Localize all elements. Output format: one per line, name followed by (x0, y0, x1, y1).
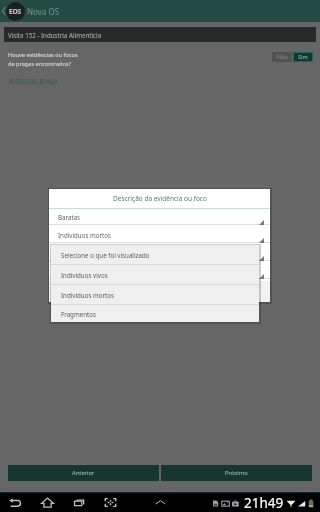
staticText: Visita 152 - Industria Alimenticia (8, 31, 102, 39)
staticText: Sim (298, 53, 308, 61)
button[interactable]: Não (272, 52, 292, 62)
button[interactable]: Selecione (49, 263, 270, 281)
staticText: 21h49 (244, 494, 284, 512)
button[interactable]: Baratas (49, 209, 270, 227)
staticText: Selecione (58, 249, 86, 257)
staticText: Individuos vivos (61, 271, 108, 279)
button[interactable]: Fragmentos (51, 305, 259, 322)
staticText: Próximo (225, 469, 248, 477)
button[interactable]: Selecione o que foi visualizado (51, 245, 259, 264)
staticText: Fragmentos (61, 310, 96, 318)
staticText: Adicionar praga (9, 76, 58, 85)
staticText: Selecione o que foi visualizado (61, 251, 150, 259)
button[interactable]: EOS logo (6, 2, 25, 21)
button[interactable]: Próximo (161, 465, 312, 481)
staticText: EOS (9, 7, 22, 16)
button[interactable]: Individuos mortos (51, 285, 259, 304)
button[interactable]: Back (5, 493, 25, 512)
button[interactable]: Recent apps (69, 493, 89, 512)
button[interactable]: Adicionar praga (9, 76, 58, 85)
button[interactable]: Expand status bar (150, 493, 170, 512)
button[interactable]: Selecione (49, 245, 270, 263)
button[interactable]: Home (37, 493, 57, 512)
button[interactable]: Anterior (8, 465, 159, 481)
staticText: Nova OS (27, 6, 60, 17)
button[interactable]: Individuos mortos (49, 227, 270, 245)
button[interactable]: Visita 152 - Industria Alimenticia (4, 27, 316, 42)
staticText: Descrição da evidência ou foco (113, 194, 207, 203)
staticText: Baratas (58, 213, 81, 221)
staticText: Selecione (58, 267, 86, 275)
staticText: Houve evidências ou focos de pragas enco… (8, 51, 78, 67)
button[interactable]: Individuos vivos (51, 265, 259, 284)
button[interactable]: Sim (294, 53, 312, 61)
staticText: Anterior (72, 469, 95, 477)
staticText: Individuos mortos (58, 231, 112, 239)
button[interactable]: Back (0, 0, 7, 22)
staticText: Individuos mortos (61, 291, 115, 299)
button[interactable]: Screenshot (100, 493, 120, 512)
staticText: Não (277, 53, 288, 61)
